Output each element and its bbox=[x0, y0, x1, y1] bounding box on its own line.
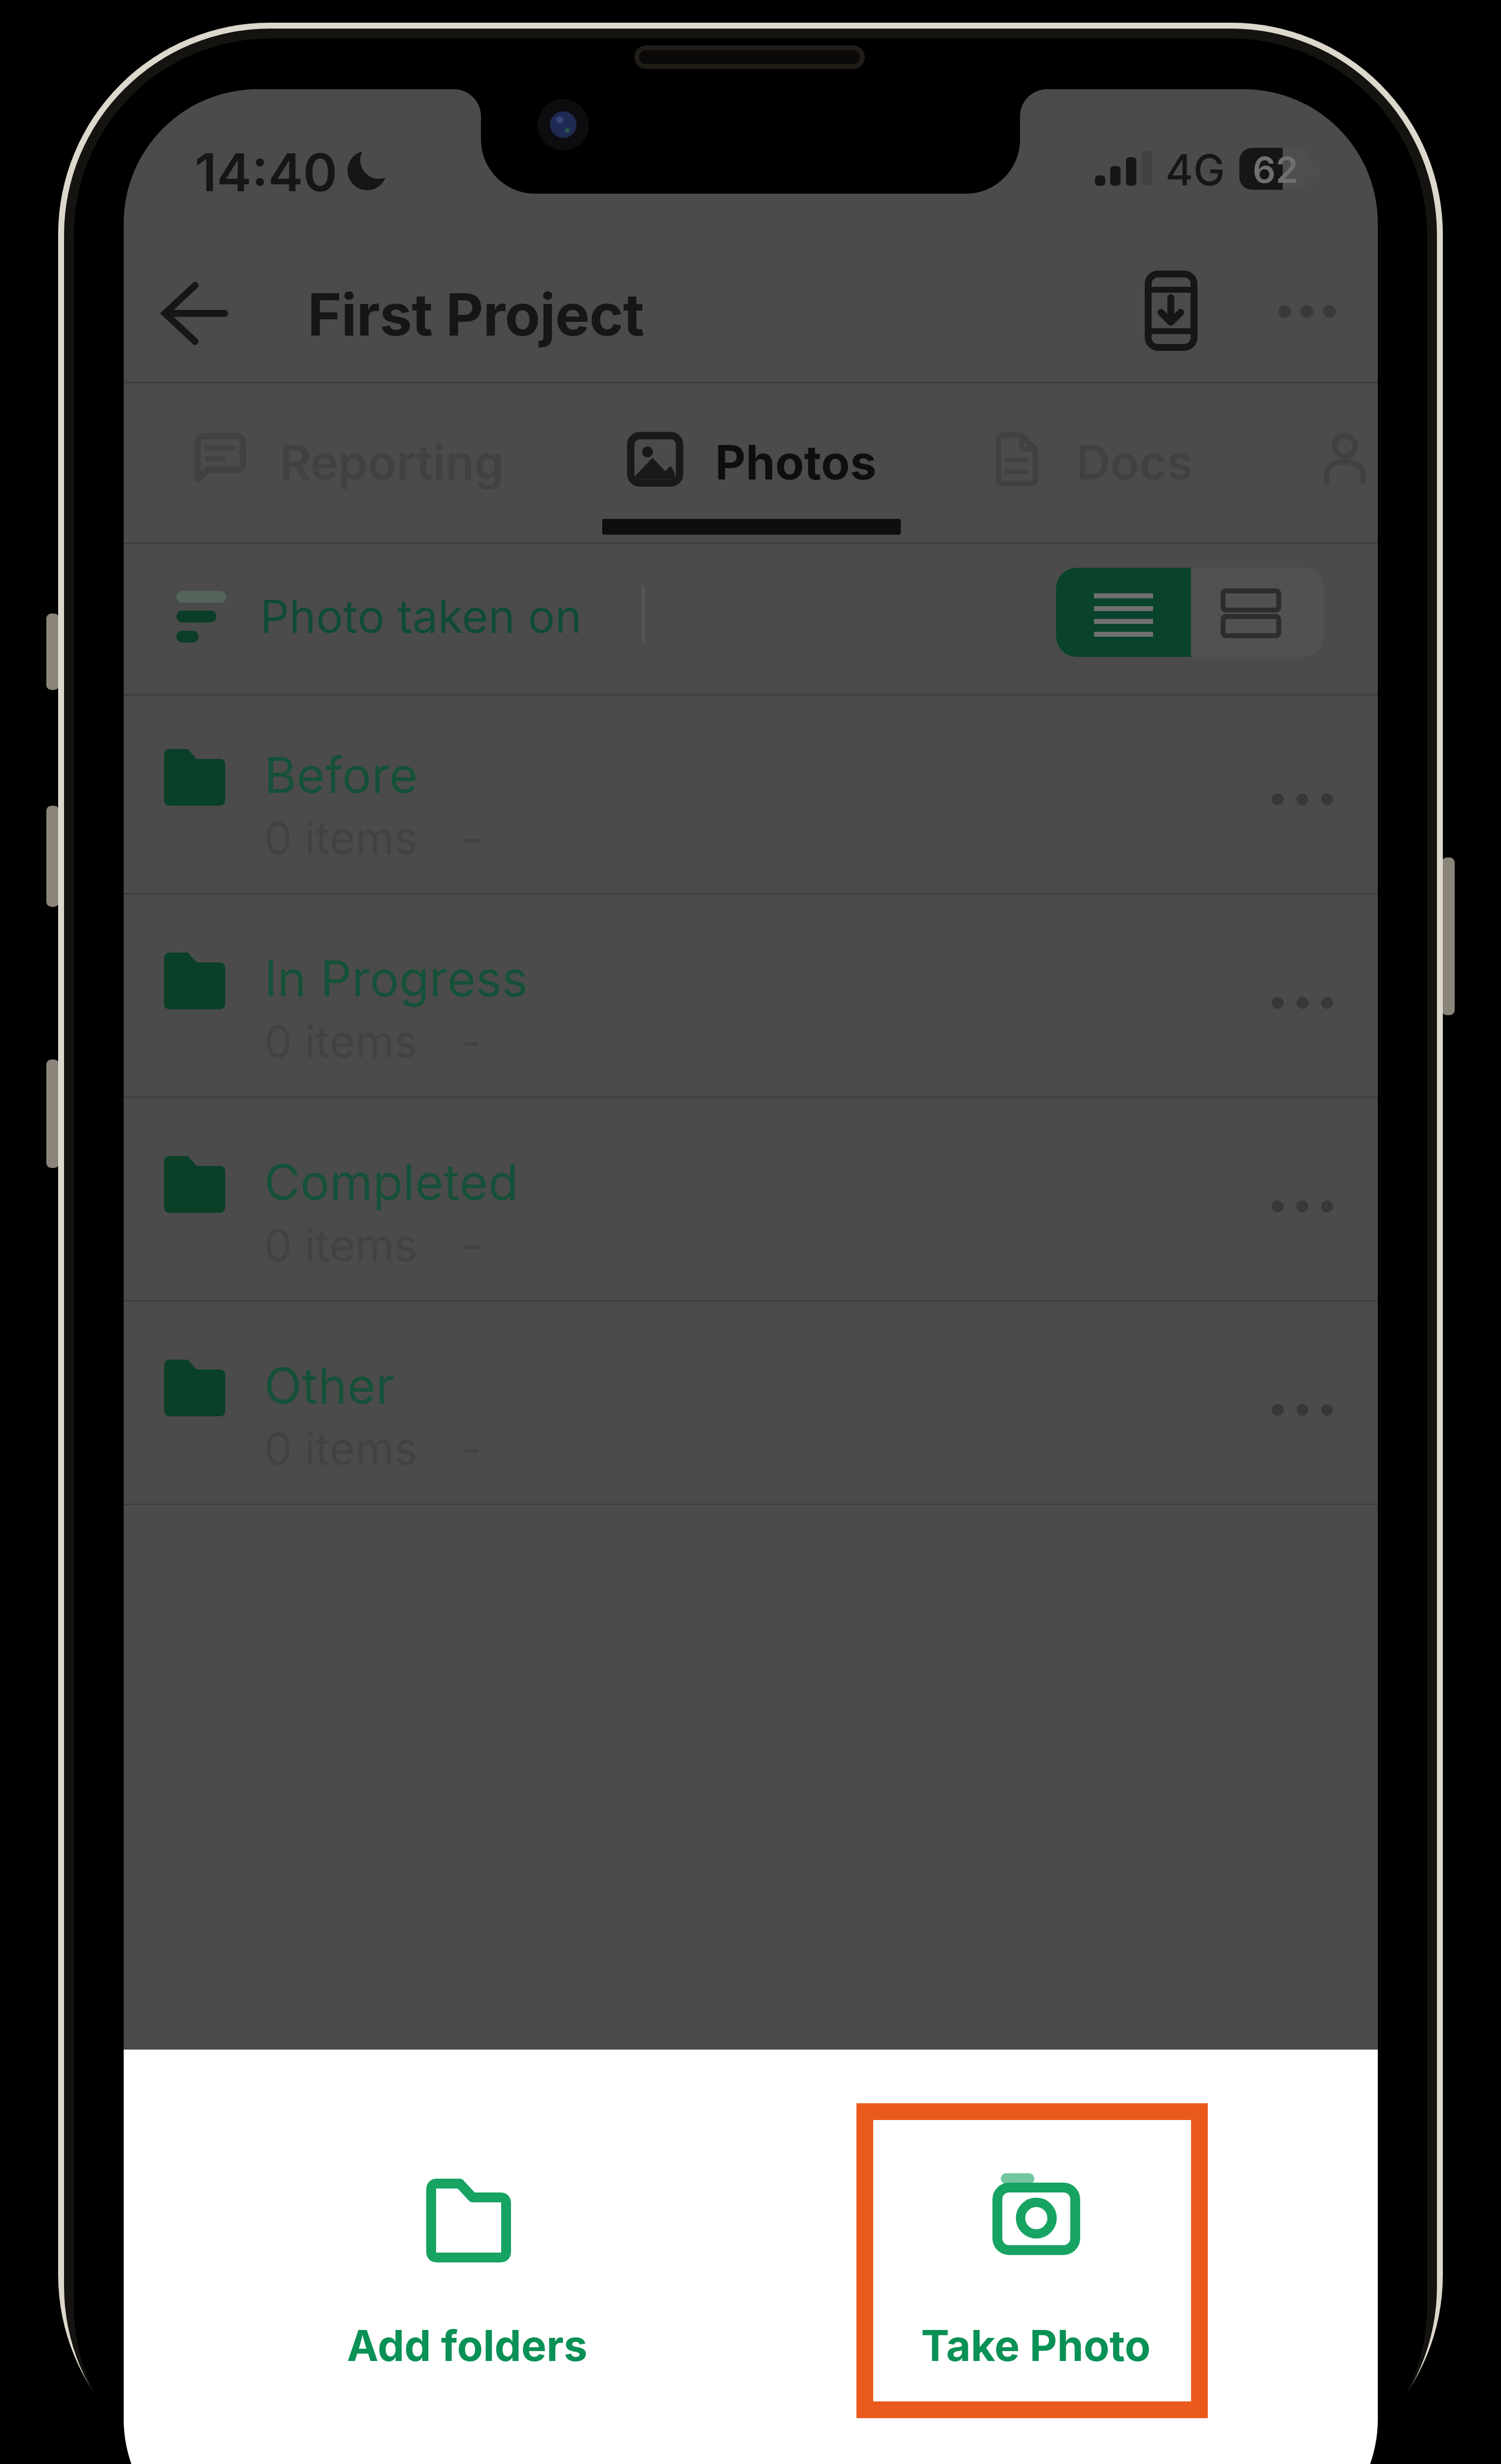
staticText: Photos bbox=[715, 434, 877, 491]
staticText: Completed bbox=[264, 1152, 518, 1212]
staticText: 0 items bbox=[264, 1218, 418, 1272]
staticText: 0 items bbox=[264, 1422, 418, 1475]
staticText: 4G bbox=[1165, 144, 1225, 196]
button[interactable]: Other bbox=[124, 1306, 1378, 1505]
staticText: First Project bbox=[307, 279, 644, 350]
button[interactable] bbox=[153, 272, 237, 355]
staticText: Docs bbox=[1076, 434, 1193, 491]
staticText: Add folders bbox=[347, 2320, 588, 2371]
button[interactable]: In Progress bbox=[124, 899, 1378, 1098]
staticText: Take Photo bbox=[921, 2320, 1151, 2371]
button[interactable] bbox=[612, 419, 887, 508]
button[interactable] bbox=[153, 557, 646, 646]
staticText: 0 items bbox=[264, 811, 418, 865]
button[interactable] bbox=[301, 2114, 646, 2390]
staticText: In Progress bbox=[264, 949, 528, 1008]
button[interactable] bbox=[1191, 568, 1324, 657]
button[interactable]: Completed bbox=[124, 1103, 1378, 1301]
button[interactable] bbox=[868, 2114, 1213, 2390]
staticText: 0 items bbox=[264, 1015, 418, 1068]
button[interactable]: Before bbox=[124, 696, 1378, 894]
button[interactable] bbox=[1306, 419, 1378, 508]
button[interactable] bbox=[1056, 568, 1191, 657]
button[interactable] bbox=[1133, 259, 1207, 358]
staticText: Other bbox=[264, 1356, 395, 1415]
staticText: Photo taken on bbox=[260, 589, 582, 644]
staticText: Reporting bbox=[280, 434, 504, 491]
staticText: 14:40 bbox=[195, 140, 338, 204]
staticText: 62 bbox=[1253, 148, 1298, 190]
button[interactable] bbox=[981, 419, 1237, 508]
button[interactable] bbox=[1257, 276, 1356, 345]
staticText: Before bbox=[264, 745, 418, 805]
button[interactable] bbox=[178, 419, 523, 508]
